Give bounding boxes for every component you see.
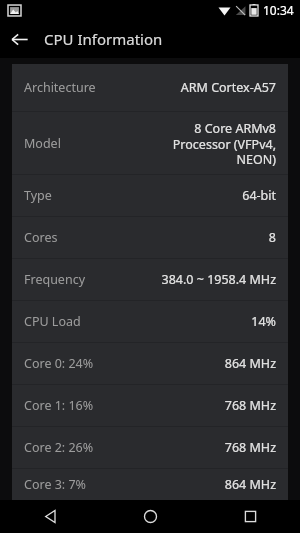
staticText: Cores bbox=[24, 229, 260, 246]
staticText: Core 0: 24% bbox=[24, 355, 216, 372]
staticText: Model bbox=[24, 135, 164, 152]
staticText: Core 1: 16% bbox=[24, 397, 216, 414]
staticText: 64-bit bbox=[242, 187, 276, 204]
staticText: 14% bbox=[251, 313, 276, 330]
staticText: 8 bbox=[268, 229, 276, 246]
staticText: Type bbox=[24, 187, 234, 204]
button[interactable]: Home bbox=[100, 500, 200, 533]
staticText: 8 Core ARMv8 Processor (VFPv4, NEON) bbox=[172, 120, 276, 167]
button[interactable]: Architecture bbox=[12, 64, 288, 111]
staticText: Core 2: 26% bbox=[24, 439, 216, 456]
staticText: CPU Load bbox=[24, 313, 243, 330]
button[interactable]: Cores bbox=[12, 217, 288, 258]
button[interactable]: Core 1: 16% bbox=[12, 385, 288, 426]
button[interactable]: Back bbox=[0, 500, 100, 533]
staticText: 864 MHz bbox=[224, 355, 276, 372]
staticText: 768 MHz bbox=[224, 397, 276, 414]
button[interactable]: Back bbox=[0, 20, 38, 58]
button[interactable]: Core 0: 24% bbox=[12, 343, 288, 384]
staticText: CPU Information bbox=[44, 29, 163, 49]
button[interactable]: CPU Load bbox=[12, 301, 288, 342]
button[interactable]: Type bbox=[12, 175, 288, 216]
staticText: 768 MHz bbox=[224, 439, 276, 456]
button[interactable]: Model bbox=[12, 112, 288, 174]
button[interactable]: Recent apps bbox=[200, 500, 300, 533]
button[interactable]: Frequency bbox=[12, 259, 288, 300]
button[interactable]: Core 3: 7% bbox=[12, 469, 288, 500]
staticText: 10:34 bbox=[263, 2, 294, 18]
staticText: Architecture bbox=[24, 79, 172, 96]
staticText: ARM Cortex-A57 bbox=[180, 79, 276, 96]
button[interactable]: Core 2: 26% bbox=[12, 427, 288, 468]
staticText: Frequency bbox=[24, 271, 153, 288]
staticText: Core 3: 7% bbox=[24, 476, 216, 493]
staticText: 864 MHz bbox=[224, 476, 276, 493]
staticText: 384.0 ~ 1958.4 MHz bbox=[161, 271, 276, 288]
